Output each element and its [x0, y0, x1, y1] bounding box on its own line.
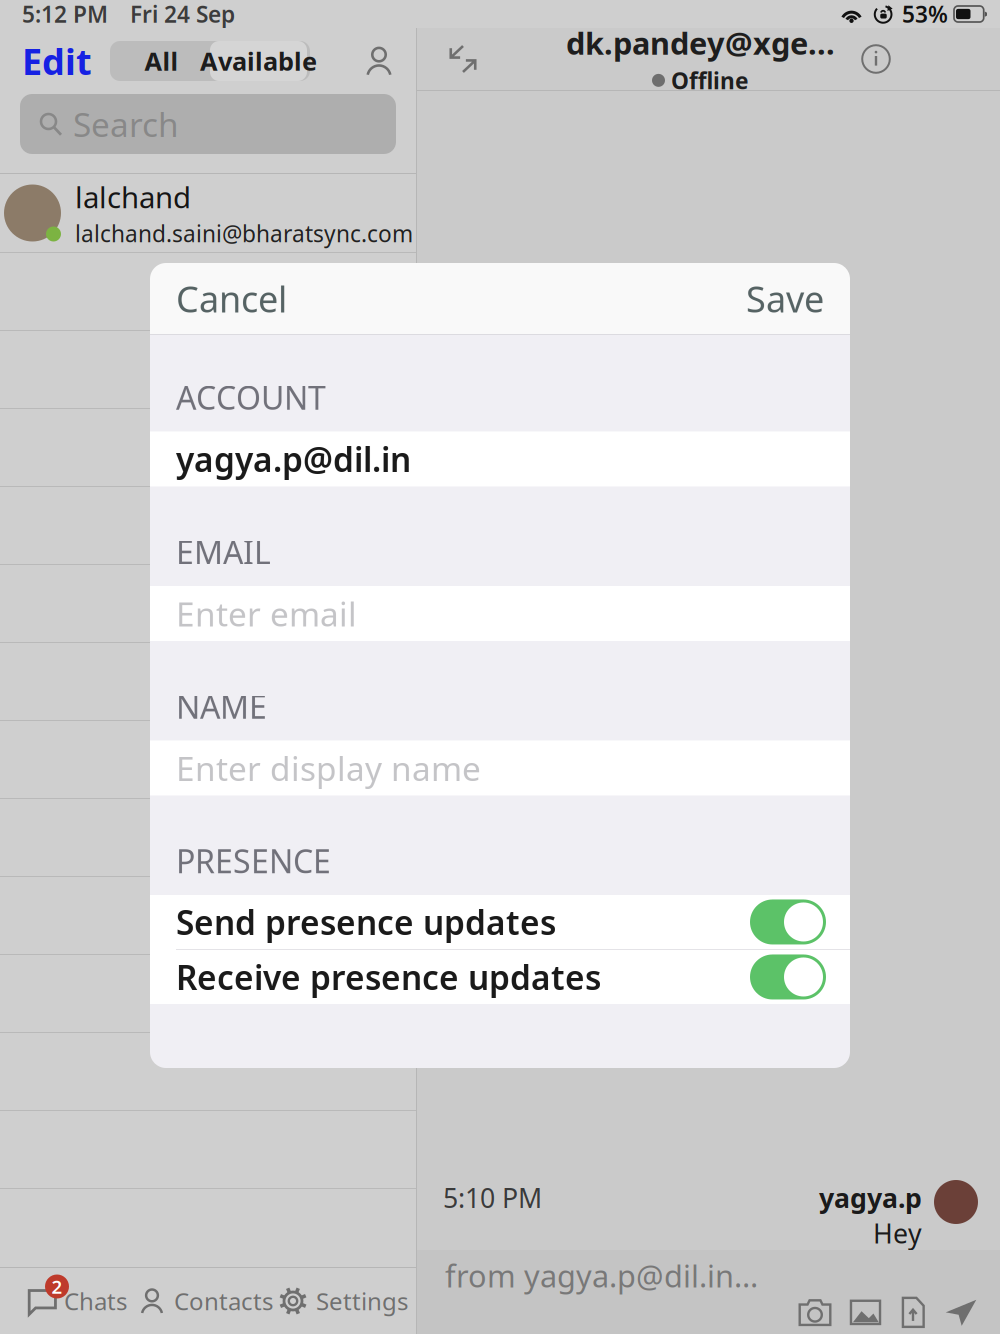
staticText: Search: [73, 102, 179, 146]
button[interactable]: Contacts: [138, 1285, 278, 1317]
staticText: All: [144, 44, 178, 78]
staticText: Save: [746, 275, 824, 322]
staticText: yagya.p@dil.in: [176, 437, 411, 481]
staticText: Enter email: [176, 591, 357, 636]
button[interactable]: Conversation info: [835, 44, 891, 74]
staticText: 53%: [902, 0, 948, 29]
button[interactable]: Save: [746, 275, 824, 322]
staticText: from yagya.p@dil.in…: [445, 1255, 758, 1296]
button[interactable]: 2: [0, 1285, 138, 1317]
staticText: Fri 24 Sep: [130, 0, 235, 29]
staticText: PRESENCE: [176, 839, 331, 882]
button[interactable]: Cancel: [176, 275, 287, 322]
staticText: NAME: [176, 685, 267, 727]
button[interactable]: Available: [210, 41, 307, 81]
button[interactable]: Edit: [0, 28, 110, 94]
button[interactable]: Receive presence updates: [150, 950, 850, 1004]
staticText: lalchand: [75, 177, 191, 216]
button[interactable]: Camera: [798, 1297, 832, 1327]
staticText: Chats: [64, 1285, 127, 1317]
button[interactable]: lalchand: [0, 174, 416, 252]
staticText: Settings: [316, 1285, 408, 1317]
staticText: Edit: [22, 37, 92, 85]
button[interactable]: Photo library: [849, 1298, 882, 1327]
staticText: Send presence updates: [176, 900, 556, 944]
staticText: yagya.p: [819, 1180, 922, 1215]
button[interactable]: Collapse sidebar: [417, 41, 509, 77]
button[interactable]: All: [113, 41, 210, 81]
staticText: Cancel: [176, 275, 287, 322]
staticText: EMAIL: [176, 530, 271, 573]
staticText: 5:12 PM: [22, 0, 108, 29]
button[interactable]: Send: [944, 1297, 978, 1327]
button[interactable]: Account: [363, 45, 416, 77]
button[interactable]: Send presence updates: [150, 895, 850, 949]
staticText: lalchand.saini@bharatsync.com: [75, 218, 413, 248]
staticText: dk.pandey@xge...: [566, 23, 835, 63]
staticText: Offline: [671, 65, 749, 95]
staticText: 2: [51, 1274, 62, 1299]
staticText: ACCOUNT: [176, 376, 326, 418]
staticText: 5:10 PM: [443, 1180, 542, 1215]
staticText: Enter display name: [176, 746, 481, 790]
button[interactable]: Attach file: [899, 1296, 927, 1329]
staticText: Contacts: [174, 1285, 273, 1317]
button[interactable]: Settings: [278, 1285, 418, 1317]
staticText: Hey: [873, 1215, 922, 1251]
staticText: Available: [200, 44, 317, 78]
staticText: Receive presence updates: [176, 955, 601, 999]
